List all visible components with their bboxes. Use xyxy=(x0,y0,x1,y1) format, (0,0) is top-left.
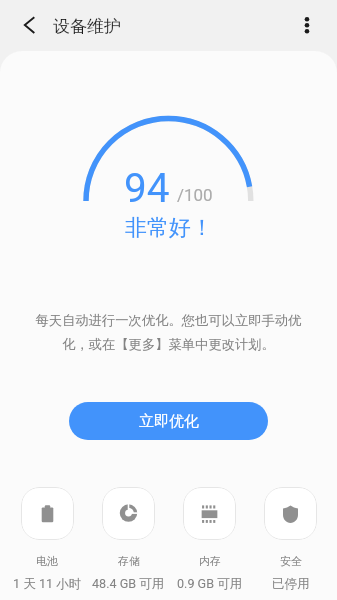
staticText: 设备维护 xyxy=(53,16,121,37)
staticText: 每天自动进行一次优化。您也可以立即手动优化，或在【更多】菜单中更改计划。 xyxy=(32,312,305,353)
button[interactable]: Memory xyxy=(169,487,250,592)
staticText: 安全 xyxy=(280,554,302,568)
staticText: 94 xyxy=(124,164,170,211)
staticText: 内存 xyxy=(199,554,221,568)
button[interactable]: Storage xyxy=(88,487,169,592)
staticText: /100 xyxy=(177,185,213,205)
staticText: 48.4 GB 可用 xyxy=(92,576,165,592)
staticText: 电池 xyxy=(36,554,58,568)
button[interactable]: Battery xyxy=(6,487,88,592)
staticText: 立即优化 xyxy=(139,412,199,431)
staticText: 存储 xyxy=(118,554,140,568)
button[interactable]: More options xyxy=(283,0,331,51)
button[interactable]: Security xyxy=(250,487,331,592)
staticText: 1 天 11 小时 xyxy=(13,576,82,592)
staticText: 已停用 xyxy=(272,576,310,592)
staticText: 0.9 GB 可用 xyxy=(177,576,243,592)
staticText: 非常好！ xyxy=(125,214,213,242)
button[interactable]: Back xyxy=(5,0,53,51)
button[interactable]: 立即优化 xyxy=(69,402,268,440)
